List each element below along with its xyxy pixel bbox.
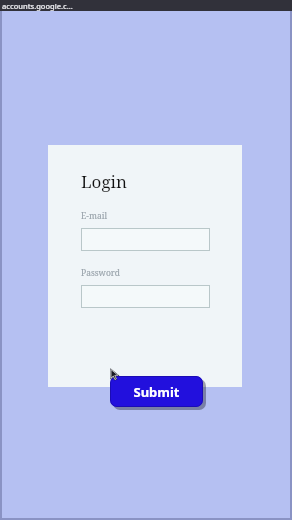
- button[interactable]: accounts.google.c...: [0, 0, 292, 11]
- button[interactable]: Password input: [81, 285, 210, 308]
- button[interactable]: Submit: [110, 376, 203, 407]
- staticText: accounts.google.c...: [2, 1, 73, 11]
- staticText: Login: [81, 170, 127, 193]
- staticText: Submit: [133, 383, 180, 401]
- staticText: Password: [81, 267, 121, 279]
- button[interactable]: E-mail input: [81, 228, 210, 251]
- staticText: E-mail: [81, 210, 108, 222]
